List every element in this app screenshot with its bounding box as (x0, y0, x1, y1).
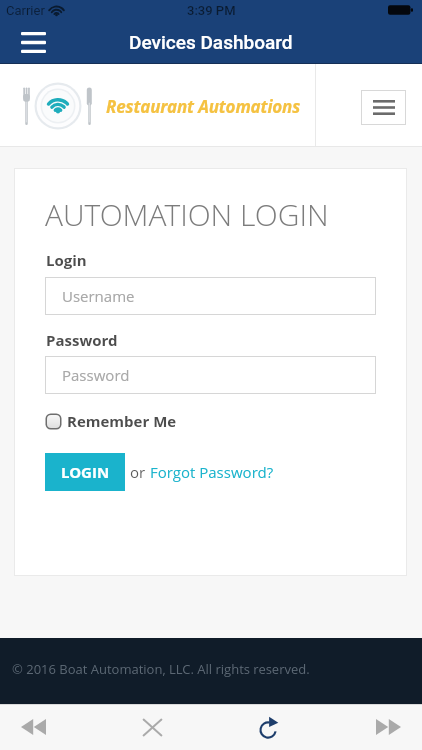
staticText: Password (62, 365, 130, 385)
button[interactable]: Forgot Password? (150, 462, 274, 482)
button[interactable]: LOGIN (45, 453, 125, 491)
button[interactable]: Back (7, 708, 59, 746)
staticText: Forgot Password? (150, 462, 274, 482)
staticText: Restaurant Automations (106, 95, 301, 118)
button[interactable]: Toggle navigation (361, 90, 406, 125)
staticText: Remember Me (67, 411, 177, 431)
button[interactable]: Password (45, 356, 376, 394)
staticText: or (130, 462, 150, 482)
staticText: © 2016 Boat Automation, LLC. All rights … (12, 660, 310, 678)
button[interactable]: Remember Me (45, 411, 177, 431)
staticText: LOGIN (61, 462, 110, 482)
staticText: Devices Dashboard (129, 31, 293, 53)
staticText: Carrier (6, 3, 45, 18)
button[interactable]: Forward (362, 708, 414, 746)
staticText: 3:39 PM (187, 3, 236, 18)
staticText: Login (46, 250, 87, 270)
button[interactable]: Stop (126, 708, 178, 746)
staticText: Username (62, 286, 135, 306)
staticText: Password (46, 330, 118, 350)
button[interactable]: Username (45, 277, 376, 315)
staticText: AUTOMATION LOGIN (45, 194, 329, 235)
button[interactable]: Menu (12, 23, 54, 61)
button[interactable]: Reload (243, 708, 295, 746)
